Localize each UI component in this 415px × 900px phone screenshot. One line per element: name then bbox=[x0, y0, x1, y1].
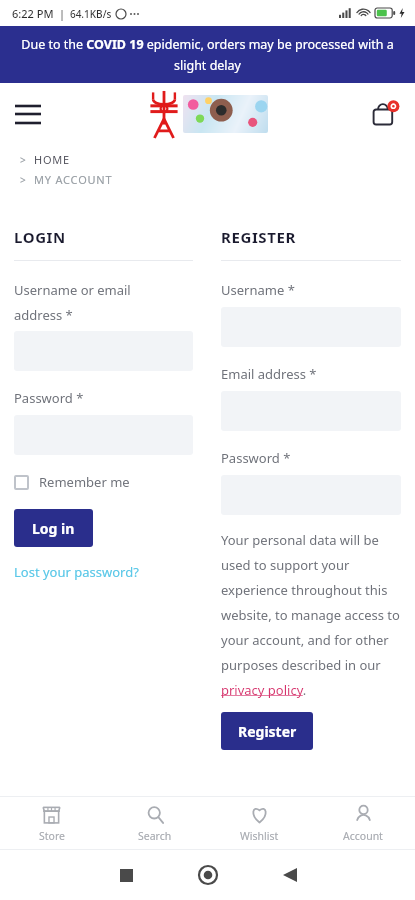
button[interactable]: Back bbox=[264, 850, 316, 900]
staticText: Username or email address * bbox=[14, 281, 131, 323]
staticText: Account bbox=[343, 829, 383, 843]
staticText: Username * bbox=[221, 281, 295, 299]
button[interactable]: Home bbox=[182, 850, 234, 900]
staticText: Your personal data will be used to suppo… bbox=[221, 531, 401, 698]
staticText: Password * bbox=[221, 449, 291, 467]
staticText: Lost your password? bbox=[14, 563, 139, 581]
staticText: | 64.1KB/s bbox=[54, 7, 112, 21]
button[interactable]: Cart bbox=[363, 92, 407, 136]
staticText: 6:22 PM bbox=[12, 6, 54, 21]
staticText: Register bbox=[238, 722, 297, 741]
button[interactable]: > bbox=[20, 172, 113, 187]
staticText: Due to the COVID 19 epidemic, orders may… bbox=[10, 36, 405, 73]
button[interactable]: Lost your password? bbox=[14, 563, 139, 581]
staticText: HOME bbox=[34, 152, 71, 167]
button[interactable]: Account bbox=[311, 797, 415, 849]
button[interactable]: Remember me bbox=[14, 473, 130, 491]
button[interactable] bbox=[147, 89, 268, 139]
button[interactable]: Menu bbox=[6, 92, 50, 136]
staticText: Remember me bbox=[39, 473, 130, 491]
button[interactable]: Search bbox=[103, 797, 207, 849]
staticText: Log in bbox=[32, 519, 75, 538]
staticText: > bbox=[20, 153, 26, 167]
staticText: Search bbox=[138, 829, 172, 843]
button[interactable]: > bbox=[20, 152, 71, 167]
button[interactable]: Store bbox=[0, 797, 103, 849]
staticText: Store bbox=[39, 829, 65, 843]
button[interactable]: Register bbox=[221, 712, 313, 750]
staticText: LOGIN bbox=[14, 227, 66, 247]
button[interactable]: Recents bbox=[100, 850, 152, 900]
staticText: Wishlist bbox=[240, 829, 279, 843]
staticText: Password * bbox=[14, 389, 84, 407]
button[interactable]: Wishlist bbox=[207, 797, 311, 849]
staticText: > bbox=[20, 173, 26, 187]
staticText: Email address * bbox=[221, 365, 317, 383]
staticText: MY ACCOUNT bbox=[34, 172, 113, 187]
staticText: REGISTER bbox=[221, 227, 296, 247]
button[interactable]: Log in bbox=[14, 509, 93, 547]
